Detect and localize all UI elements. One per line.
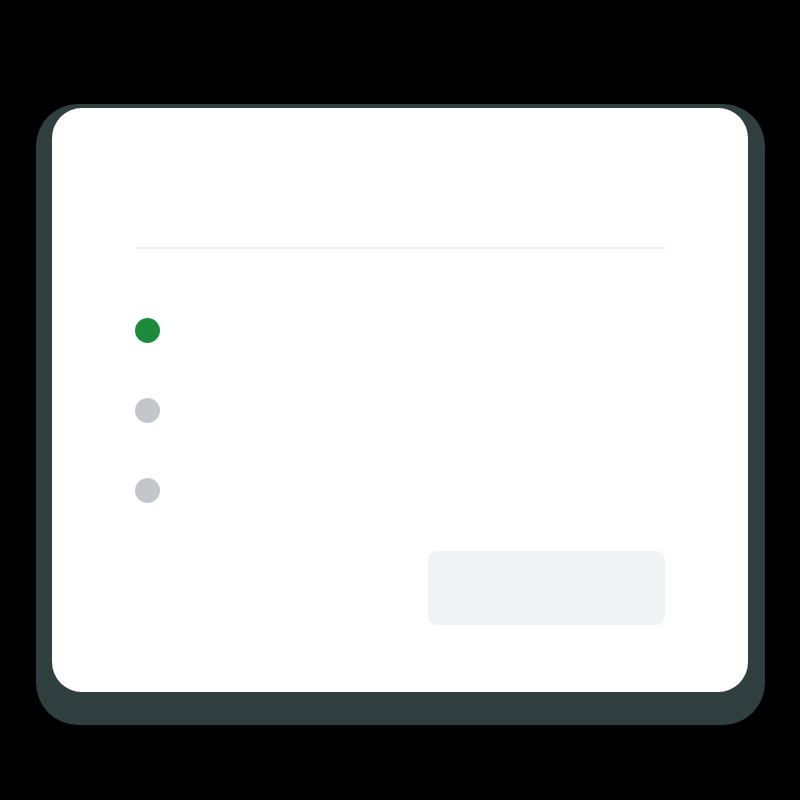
button[interactable]: Option 2 xyxy=(135,398,160,423)
button[interactable]: Option 3 xyxy=(135,478,160,503)
button[interactable]: Option 1, selected xyxy=(135,318,160,343)
